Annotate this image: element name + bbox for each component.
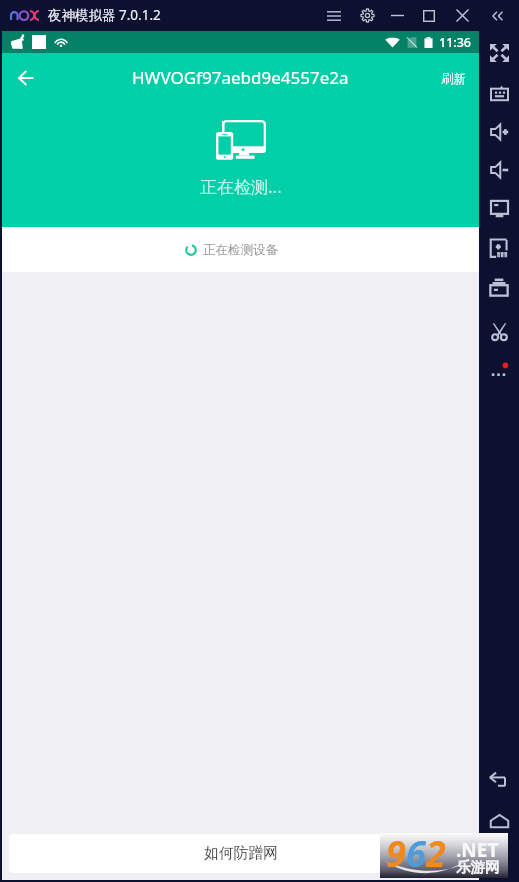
staticText: 夜神模拟器 7.0.1.2	[48, 6, 161, 24]
button[interactable]: Home	[479, 805, 519, 837]
staticText: 乐游网	[456, 858, 500, 876]
button[interactable]: Install APK	[479, 232, 519, 264]
button[interactable]: Cut	[479, 315, 519, 347]
staticText: .NET	[456, 837, 499, 863]
button[interactable]: Shared folder	[479, 271, 519, 303]
staticText: 11:36	[439, 34, 472, 51]
staticText: 如何防蹭网	[204, 844, 278, 863]
staticText: 刷新	[441, 71, 466, 87]
button[interactable]: Minimize	[381, 0, 413, 31]
staticText: 9	[386, 829, 406, 874]
button[interactable]: Close	[446, 0, 478, 31]
staticText: 正在检测...	[200, 175, 282, 198]
button[interactable]: Collapse sidebar	[482, 0, 514, 31]
staticText: 2	[426, 829, 446, 874]
button[interactable]: Back	[3, 53, 47, 97]
staticText: HWVOGf97aebd9e4557e2a	[132, 66, 349, 89]
staticText: 正在检测设备	[203, 242, 278, 258]
button[interactable]: Settings	[351, 0, 383, 31]
staticText: 6	[406, 829, 426, 874]
button[interactable]: 刷新	[427, 53, 479, 101]
button[interactable]: Fullscreen	[479, 37, 519, 69]
button[interactable]: Back	[479, 764, 519, 796]
button[interactable]: Menu	[318, 0, 350, 31]
button[interactable]: More	[479, 355, 519, 387]
button[interactable]: Keyboard	[479, 77, 519, 109]
button[interactable]: Maximize	[413, 0, 445, 31]
button[interactable]: Volume down	[479, 154, 519, 186]
button[interactable]: Screenshot	[479, 193, 519, 225]
button[interactable]: Volume up	[479, 116, 519, 148]
button[interactable]: 如何防蹭网	[9, 834, 472, 873]
